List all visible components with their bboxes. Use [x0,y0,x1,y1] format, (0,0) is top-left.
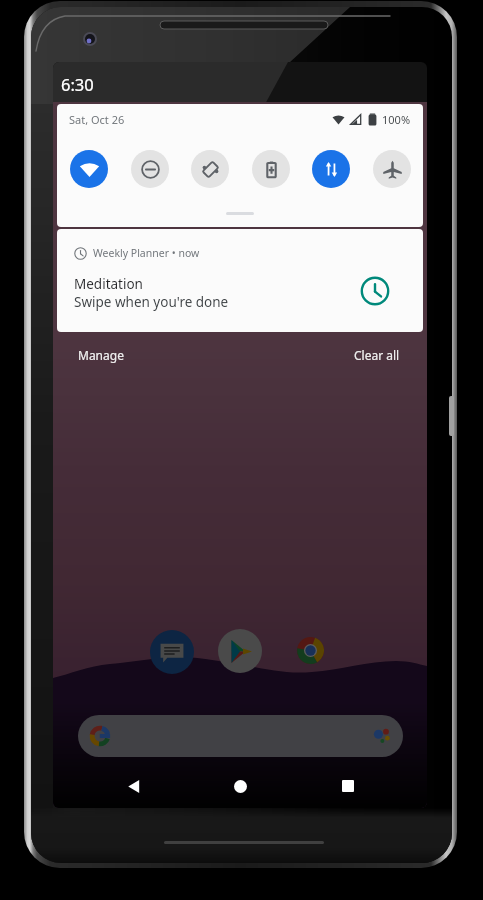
button[interactable]: Quick setting [131,150,169,188]
button[interactable]: Quick setting [252,150,290,188]
button[interactable]: Home [228,774,252,798]
button[interactable]: Recents [336,774,360,798]
staticText: Swipe when you're done [74,293,229,311]
staticText: 100% [382,112,411,127]
staticText: Weekly Planner • now [93,246,200,260]
staticText: Clear all [354,347,400,363]
button[interactable]: Back [121,774,145,798]
button[interactable]: Clear all [354,343,400,367]
button[interactable]: Quick setting [373,150,411,188]
button[interactable]: Search [78,715,403,757]
button[interactable]: Quick setting [312,150,350,188]
button[interactable]: Chrome [288,628,333,673]
button[interactable]: Quick setting [70,150,108,188]
button[interactable]: Manage [78,343,124,367]
staticText: 6:30 [61,73,94,95]
button[interactable]: Weekly Planner • now [57,229,423,332]
button[interactable]: Messages [150,630,194,674]
staticText: Manage [78,347,124,363]
button[interactable]: Quick setting [191,150,229,188]
button[interactable]: Play Store [218,629,262,673]
staticText: Sat, Oct 26 [69,112,125,127]
staticText: Meditation [74,275,143,293]
